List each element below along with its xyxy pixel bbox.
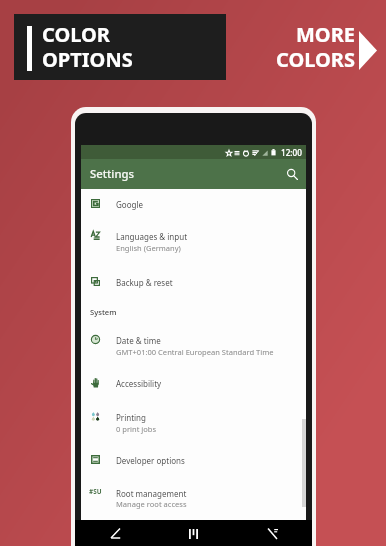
staticText: Printing <box>116 412 146 423</box>
button[interactable]: COLOR <box>14 14 226 80</box>
staticText: GMT+01:00 Central European Standard Time <box>116 347 274 357</box>
button[interactable]: Accessibility <box>81 370 306 402</box>
button[interactable]: Backup & reset <box>81 266 306 298</box>
staticText: Developer options <box>116 455 185 466</box>
staticText: MORE <box>255 21 355 48</box>
staticText: Manage root access <box>116 499 187 509</box>
staticText: Backup & reset <box>116 277 173 288</box>
staticText: OPTIONS <box>42 46 133 73</box>
button[interactable]: Developer options <box>81 447 306 479</box>
staticText: 0 print jobs <box>116 424 157 434</box>
staticText: Root management <box>116 488 187 499</box>
button[interactable]: Home <box>154 520 233 546</box>
staticText: 12:00 <box>281 147 302 158</box>
button[interactable]: Languages & input <box>81 221 306 266</box>
staticText: Settings <box>90 166 134 181</box>
button[interactable]: Search <box>280 162 304 186</box>
staticText: Languages & input <box>116 231 188 242</box>
button[interactable]: Recents <box>233 520 312 546</box>
button[interactable]: #SU <box>81 479 306 524</box>
staticText: Accessibility <box>116 378 162 389</box>
button[interactable]: Back <box>75 520 154 546</box>
button[interactable]: More colors <box>359 31 377 70</box>
button[interactable]: Google <box>81 189 306 221</box>
staticText: English (Germany) <box>116 243 181 253</box>
staticText: COLOR <box>42 21 110 48</box>
staticText: System <box>90 307 117 317</box>
button[interactable]: Date & time <box>81 325 306 370</box>
staticText: Date & time <box>116 335 161 346</box>
staticText: Google <box>116 199 143 210</box>
staticText: COLORS <box>255 46 355 73</box>
button[interactable]: Printing <box>81 402 306 447</box>
staticText: #SU <box>89 487 102 496</box>
